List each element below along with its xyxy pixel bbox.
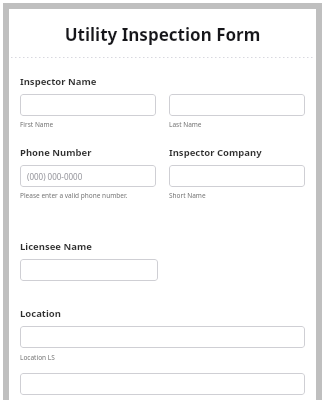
button[interactable] [169,165,305,187]
staticText: Location [20,307,61,320]
button[interactable] [20,259,158,281]
button[interactable] [169,94,305,116]
button[interactable] [20,373,305,395]
staticText: Last Name [169,120,202,129]
staticText: Licensee Name [20,240,92,253]
staticText: Utility Inspection Form [9,23,316,46]
staticText: (000) 000-0000 [27,171,83,182]
staticText: Inspector Name [20,75,97,88]
button[interactable] [20,94,156,116]
staticText: Short Name [169,191,206,200]
staticText: Location LS [20,353,55,362]
button[interactable]: (000) 000-0000 [20,165,156,187]
staticText: Phone Number [20,146,92,159]
staticText: First Name [20,120,54,129]
staticText: Inspector Company [169,146,262,159]
button[interactable] [20,326,305,348]
staticText: Please enter a valid phone number. [20,191,128,200]
